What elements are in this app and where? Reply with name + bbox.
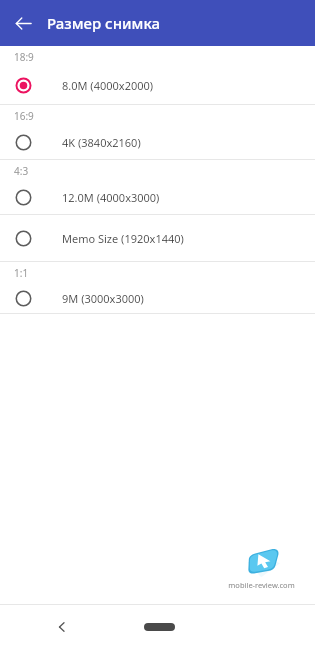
button[interactable]: Back	[7, 7, 39, 39]
staticText: mobile-review.com	[228, 580, 295, 590]
staticText: Размер снимка	[47, 13, 160, 33]
staticText: 12.0M (4000x3000)	[62, 190, 160, 205]
staticText: 4K (3840x2160)	[62, 135, 141, 150]
staticText: 1:1	[14, 266, 29, 280]
staticText: Memo Size (1920x1440)	[62, 231, 184, 246]
staticText: 18:9	[14, 50, 34, 64]
button[interactable]: 4K (3840x2160)	[0, 126, 315, 159]
staticText: 9M (3000x3000)	[62, 291, 144, 306]
button[interactable]: 8.0M (4000x2000)	[0, 67, 315, 104]
button[interactable]: 9M (3000x3000)	[0, 283, 315, 313]
button[interactable]: Memo Size (1920x1440)	[0, 215, 315, 261]
button[interactable]: 12.0M (4000x3000)	[0, 181, 315, 214]
staticText: 4:3	[14, 164, 29, 178]
button[interactable]: Home	[137, 617, 181, 637]
staticText: 8.0M (4000x2000)	[62, 78, 154, 93]
staticText: 16:9	[14, 109, 34, 123]
button[interactable]: Back	[48, 613, 76, 641]
